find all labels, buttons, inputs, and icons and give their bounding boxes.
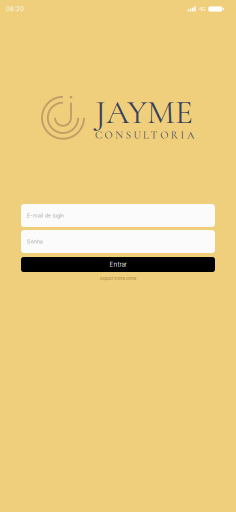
button[interactable]: Esqueci minha senha <box>21 273 215 284</box>
staticText: JAYME <box>95 92 193 133</box>
staticText: 08:20 <box>6 5 24 13</box>
staticText: 4G <box>199 6 206 12</box>
staticText: E-mail de login <box>27 212 64 219</box>
staticText: Esqueci minha senha <box>100 276 136 281</box>
button[interactable]: Senha <box>21 230 215 253</box>
button[interactable]: E-mail de login <box>21 204 215 227</box>
staticText: CONSULTORIA <box>95 128 194 141</box>
staticText: Senha <box>27 238 43 245</box>
staticText: Entrar <box>109 261 126 268</box>
button[interactable]: Entrar <box>21 257 215 272</box>
